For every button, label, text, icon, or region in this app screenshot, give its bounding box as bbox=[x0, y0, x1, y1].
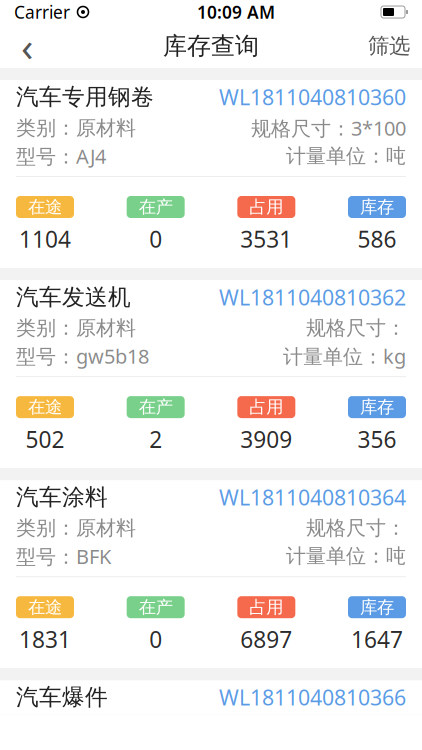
staticText: 占用 bbox=[249, 196, 283, 218]
staticText: 规格尺寸： bbox=[306, 516, 406, 540]
staticText: 502 bbox=[25, 424, 64, 454]
staticText: 1104 bbox=[19, 224, 71, 254]
staticText: 3909 bbox=[240, 424, 292, 454]
staticText: 2 bbox=[149, 424, 162, 454]
staticText: 356 bbox=[357, 424, 396, 454]
button[interactable]: 汽车涂料 bbox=[0, 480, 422, 668]
staticText: Carrier bbox=[14, 0, 70, 23]
staticText: 库存查询 bbox=[163, 31, 259, 61]
staticText: WL1811040810362 bbox=[219, 283, 406, 311]
staticText: WL1811040810364 bbox=[219, 483, 406, 511]
staticText: 汽车专用钢卷 bbox=[16, 83, 154, 111]
staticText: 586 bbox=[357, 224, 396, 254]
staticText: ‹ bbox=[21, 19, 33, 72]
staticText: 筛选 bbox=[368, 33, 410, 59]
staticText: 计量单位：吨 bbox=[286, 144, 406, 168]
staticText: 汽车发送机 bbox=[16, 283, 131, 311]
staticText: 类别：原材料 bbox=[16, 316, 136, 340]
staticText: 型号：gw5b18 bbox=[16, 343, 149, 369]
button[interactable]: 汽车爆件 bbox=[0, 680, 422, 714]
staticText: 规格尺寸：3*100 bbox=[251, 115, 406, 141]
staticText: 3531 bbox=[240, 224, 292, 254]
staticText: 0 bbox=[149, 224, 162, 254]
staticText: 型号：BFK bbox=[16, 543, 111, 569]
staticText: 型号：AJ4 bbox=[16, 143, 106, 169]
staticText: 在途 bbox=[28, 597, 62, 618]
staticText: 0 bbox=[149, 624, 162, 654]
staticText: 占用 bbox=[249, 396, 283, 418]
button[interactable]: 汽车发送机 bbox=[0, 280, 422, 468]
staticText: 在产 bbox=[139, 196, 173, 218]
staticText: 库存 bbox=[360, 396, 394, 418]
staticText: 规格尺寸： bbox=[306, 316, 406, 340]
staticText: 6897 bbox=[240, 624, 292, 654]
staticText: 占用 bbox=[249, 597, 283, 618]
staticText: 1647 bbox=[351, 624, 403, 654]
button[interactable]: Back bbox=[0, 24, 54, 68]
staticText: 在途 bbox=[28, 196, 62, 218]
staticText: 在途 bbox=[28, 396, 62, 418]
staticText: 在产 bbox=[139, 396, 173, 418]
staticText: 库存 bbox=[360, 196, 394, 218]
staticText: 汽车爆件 bbox=[16, 683, 108, 711]
staticText: 库存 bbox=[360, 597, 394, 618]
staticText: 10:09 AM bbox=[197, 0, 275, 23]
staticText: 1831 bbox=[19, 624, 71, 654]
staticText: 类别：原材料 bbox=[16, 516, 136, 540]
staticText: WL1811040810360 bbox=[219, 83, 406, 111]
button[interactable]: 筛选 bbox=[356, 24, 422, 68]
staticText: WL1811040810366 bbox=[219, 683, 406, 711]
staticText: 汽车涂料 bbox=[16, 483, 108, 511]
button[interactable]: 汽车专用钢卷 bbox=[0, 80, 422, 268]
staticText: 类别：原材料 bbox=[16, 116, 136, 140]
staticText: 计量单位：吨 bbox=[286, 544, 406, 568]
staticText: 在产 bbox=[139, 597, 173, 618]
staticText: 计量单位：kg bbox=[283, 343, 406, 369]
